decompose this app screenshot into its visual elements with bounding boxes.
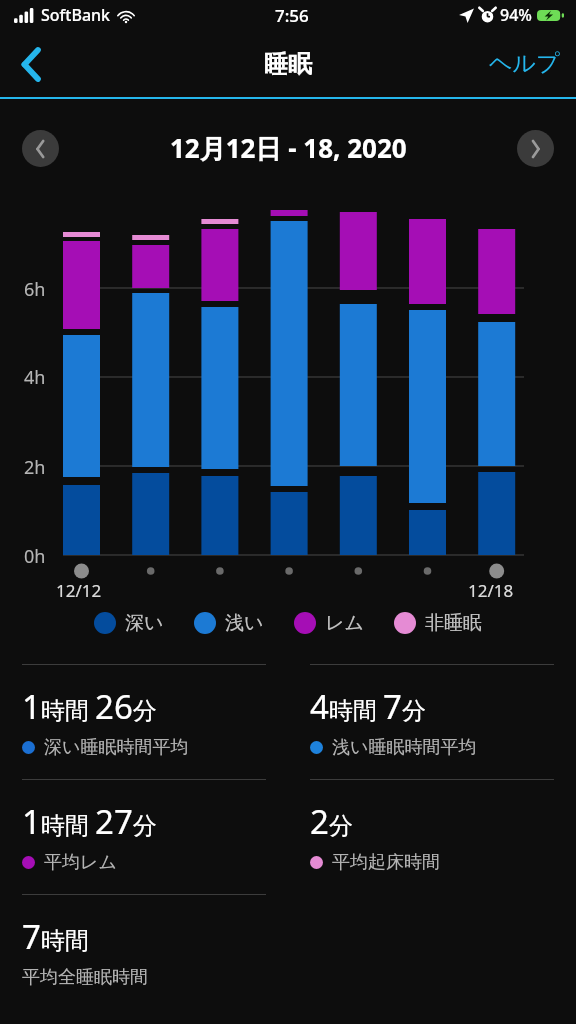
staticText: SoftBank <box>41 4 111 26</box>
staticText: 浅い <box>225 611 264 635</box>
button[interactable]: 深い <box>94 611 164 635</box>
staticText: 睡眠 <box>264 49 312 79</box>
staticText: 7時間 <box>22 914 89 959</box>
button[interactable]: Next week <box>517 130 554 167</box>
staticText: 12/12 <box>56 579 102 602</box>
staticText: 7:56 <box>275 4 309 27</box>
staticText: レム <box>325 611 364 635</box>
button[interactable]: 非睡眠 <box>394 611 482 635</box>
staticText: 平均起床時間 <box>332 851 440 874</box>
staticText: 4h <box>24 365 46 390</box>
staticText: 平均レム <box>44 851 117 874</box>
staticText: 94% <box>500 4 532 26</box>
button[interactable]: 4時間 7分 <box>310 664 554 779</box>
button[interactable]: ヘルプ <box>489 49 560 78</box>
staticText: 2分 <box>310 799 353 844</box>
staticText: 1時間 26分 <box>22 684 157 729</box>
staticText: 深い睡眠時間平均 <box>44 736 189 759</box>
staticText: 0h <box>24 544 46 569</box>
button[interactable]: 7時間 <box>22 894 266 1009</box>
staticText: 12/18 <box>468 579 514 602</box>
button[interactable]: レム <box>294 611 364 635</box>
staticText: ヘルプ <box>489 49 560 78</box>
staticText: 深い <box>125 611 164 635</box>
staticText: 平均全睡眠時間 <box>22 966 148 989</box>
button[interactable]: Previous week <box>22 130 59 167</box>
staticText: 浅い睡眠時間平均 <box>332 736 477 759</box>
button[interactable]: Back <box>4 37 58 91</box>
button[interactable]: 浅い <box>194 611 264 635</box>
staticText: 6h <box>24 277 46 302</box>
button[interactable]: 1時間 26分 <box>22 664 266 779</box>
staticText: 1時間 27分 <box>22 799 157 844</box>
staticText: 非睡眠 <box>425 611 482 635</box>
staticText: 12月12日 - 18, 2020 <box>170 130 407 166</box>
button[interactable]: 2分 <box>310 779 554 894</box>
staticText: 4時間 7分 <box>310 684 426 729</box>
staticText: 2h <box>24 455 46 480</box>
button[interactable]: 1時間 27分 <box>22 779 266 894</box>
